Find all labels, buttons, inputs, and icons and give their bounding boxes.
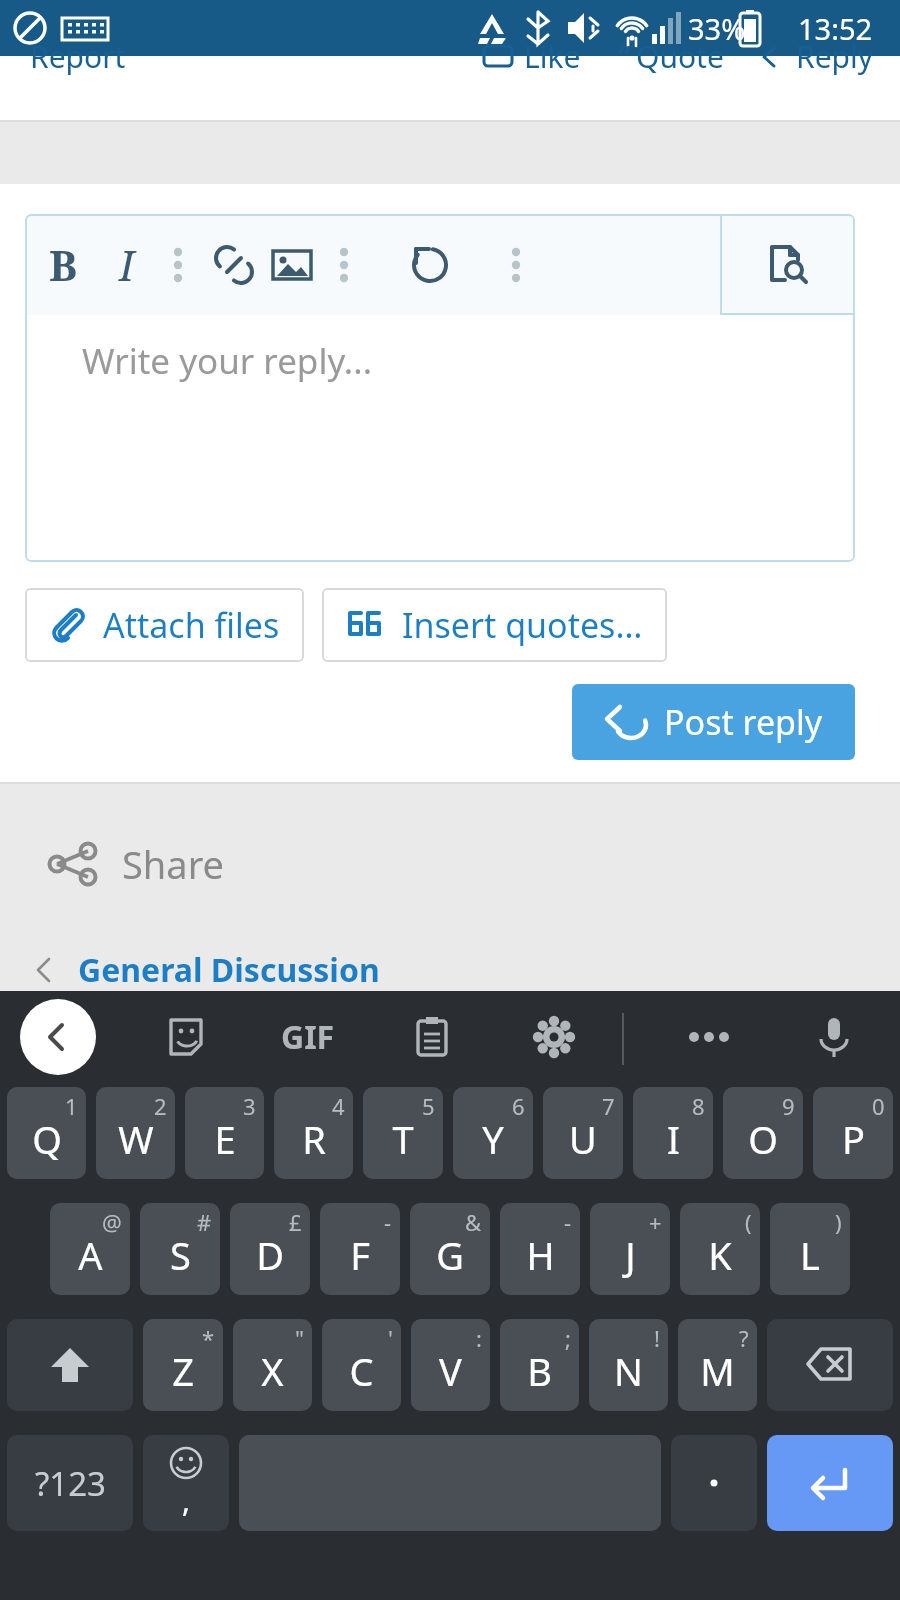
button[interactable]: Voice input (796, 999, 872, 1075)
button[interactable]: Insert image (265, 214, 319, 315)
staticText: 13:52 (798, 9, 873, 48)
staticText: 6 (512, 1091, 525, 1121)
staticText: Like (524, 36, 581, 77)
staticText: Q (32, 1113, 62, 1165)
button[interactable]: Insert quotes… (322, 588, 667, 662)
button[interactable]: 3 (185, 1087, 264, 1179)
button[interactable]: ) (770, 1203, 850, 1295)
button[interactable]: 8 (633, 1087, 713, 1179)
button[interactable]: ? (678, 1319, 757, 1411)
staticText: ? (739, 1323, 749, 1353)
button[interactable]: Italic (101, 214, 153, 315)
button[interactable] (671, 1435, 757, 1531)
button[interactable]: More options (672, 999, 748, 1075)
button[interactable]: Back (20, 999, 96, 1075)
button[interactable]: ' (322, 1319, 401, 1411)
button[interactable]: 5 (363, 1087, 443, 1179)
staticText: “ (619, 36, 630, 77)
button[interactable]: Report (0, 36, 134, 77)
staticText: Quote (636, 36, 724, 77)
staticText: B (527, 1345, 552, 1397)
button[interactable]: General Discussion (0, 948, 900, 992)
staticText: I (119, 236, 135, 293)
button[interactable]: 2 (96, 1087, 175, 1179)
button[interactable]: # (140, 1203, 220, 1295)
staticText: Report (30, 36, 126, 77)
button[interactable]: Emoji (143, 1435, 229, 1531)
button[interactable]: More options (491, 214, 541, 315)
staticText: , (182, 1480, 191, 1521)
button[interactable]: 6 (453, 1087, 533, 1179)
button[interactable]: Attach files (25, 588, 304, 662)
button[interactable]: Insert link (203, 214, 265, 315)
button[interactable]: Stickers (148, 999, 224, 1075)
staticText: Reply (796, 36, 874, 77)
staticText: 4 (332, 1091, 345, 1121)
button[interactable]: ; (500, 1319, 579, 1411)
staticText: 9 (782, 1091, 795, 1121)
staticText: H (526, 1229, 555, 1281)
staticText: * (202, 1323, 215, 1353)
button[interactable]: GIF (270, 999, 346, 1075)
button[interactable]: & (410, 1203, 490, 1295)
button[interactable]: Like (476, 36, 587, 77)
staticText: ?123 (35, 1461, 106, 1506)
button[interactable]: ( (680, 1203, 760, 1295)
button[interactable]: Clipboard (394, 999, 470, 1075)
button[interactable]: " (233, 1319, 312, 1411)
staticText: Attach files (103, 602, 280, 648)
staticText: ' (388, 1323, 393, 1353)
staticText: Y (482, 1113, 504, 1165)
button[interactable]: Shift (7, 1319, 133, 1411)
button[interactable]: + (590, 1203, 670, 1295)
staticText: Insert quotes… (402, 602, 643, 648)
button[interactable]: 0 (813, 1087, 893, 1179)
staticText: R (302, 1113, 326, 1165)
button[interactable]: £ (230, 1203, 310, 1295)
button[interactable]: ! (589, 1319, 668, 1411)
staticText: Write your reply... (82, 337, 373, 385)
staticText: : (476, 1323, 482, 1353)
button[interactable]: More insert options (319, 214, 369, 315)
staticText: £ (289, 1207, 302, 1237)
button[interactable]: * (143, 1319, 223, 1411)
staticText: + (649, 1207, 662, 1237)
button[interactable]: Keyboard settings (516, 999, 592, 1075)
button[interactable]: Enter (767, 1435, 893, 1531)
button[interactable]: : (411, 1319, 490, 1411)
button[interactable]: More text options (153, 214, 203, 315)
staticText: ! (654, 1323, 660, 1353)
button[interactable]: 1 (7, 1087, 86, 1179)
button[interactable]: 4 (274, 1087, 353, 1179)
staticText: S (170, 1229, 191, 1281)
button[interactable]: 7 (543, 1087, 623, 1179)
staticText: & (465, 1207, 482, 1237)
staticText: Z (172, 1345, 194, 1397)
button[interactable]: @ (50, 1203, 130, 1295)
staticText: ( (745, 1207, 752, 1237)
staticText: V (439, 1345, 462, 1397)
button[interactable]: Bold (25, 214, 101, 315)
button[interactable]: Post reply (572, 684, 855, 760)
button[interactable]: “ (613, 36, 730, 77)
staticText: F (350, 1229, 370, 1281)
button[interactable]: - (320, 1203, 400, 1295)
button[interactable]: Preview (721, 214, 855, 315)
button[interactable]: Backspace (767, 1319, 893, 1411)
button[interactable]: ?123 (7, 1435, 133, 1531)
staticText: A (78, 1229, 103, 1281)
staticText: D (256, 1229, 284, 1281)
staticText: 2 (154, 1091, 167, 1121)
button[interactable]: Reply (756, 36, 900, 77)
staticText: 33% (688, 9, 746, 48)
staticText: - (564, 1207, 572, 1237)
button[interactable]: - (500, 1203, 580, 1295)
button[interactable]: Share (0, 830, 900, 898)
button[interactable]: Undo (369, 214, 491, 315)
staticText: J (625, 1229, 636, 1281)
staticText: W (118, 1113, 154, 1165)
staticText: X (261, 1345, 284, 1397)
button[interactable]: 9 (723, 1087, 803, 1179)
staticText: 5 (422, 1091, 435, 1121)
